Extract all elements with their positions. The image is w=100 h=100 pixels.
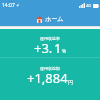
staticText: ホーム	[45, 15, 64, 23]
staticText: 運用収益額	[40, 66, 60, 71]
other: Home	[36, 16, 43, 23]
staticText: %	[62, 48, 67, 55]
staticText: +3.	[34, 39, 53, 57]
staticText: 4G	[86, 3, 92, 8]
staticText: 円	[68, 79, 73, 85]
staticText: +1,884	[27, 69, 68, 87]
button[interactable]: 運用収益額	[0, 58, 100, 100]
staticText: 1	[54, 39, 62, 57]
staticText: 運用収益率	[40, 36, 60, 41]
button[interactable]: 運用収益率	[0, 29, 100, 57]
button[interactable]: Home	[36, 15, 64, 23]
staticText: 14:07	[2, 2, 15, 9]
